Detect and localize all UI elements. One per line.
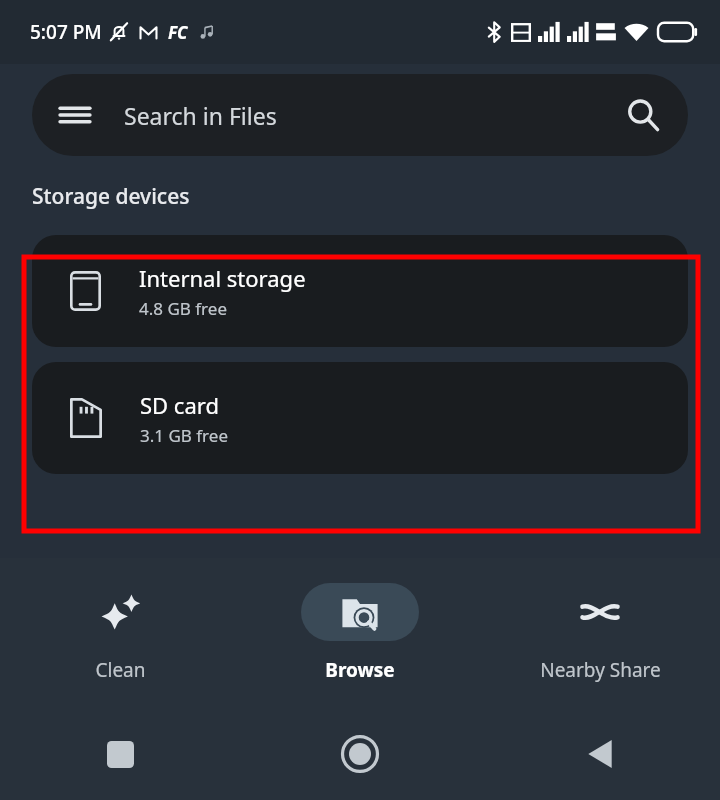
button[interactable]: Open navigation menu [58,98,92,132]
button[interactable]: Clean [0,558,240,708]
staticText: Internal storage [139,263,306,293]
staticText: 5:07 PM [30,19,102,45]
staticText: 4.8 GB free [139,297,227,320]
staticText: FC [168,21,188,44]
staticText: Search in Files [124,100,277,131]
staticText: Clean [95,657,146,683]
button[interactable]: Browse [240,558,480,708]
button[interactable]: Back [480,708,720,800]
button[interactable]: Home [240,708,480,800]
button[interactable]: Internal storage [32,235,688,347]
other: Clean [98,590,142,634]
staticText: Browse [325,657,395,683]
button[interactable]: Nearby Share [480,558,720,708]
button[interactable]: Search [626,98,660,132]
button[interactable]: Open navigation menu [32,74,688,156]
button[interactable]: Recent apps [0,708,240,800]
staticText: Storage devices [32,182,190,211]
other: Browse [340,592,380,632]
staticText: 3.1 GB free [140,424,228,447]
staticText: SD card [140,390,219,420]
other: Nearby Share [578,590,622,634]
staticText: Nearby Share [540,657,661,683]
button[interactable]: SD card [32,362,688,474]
